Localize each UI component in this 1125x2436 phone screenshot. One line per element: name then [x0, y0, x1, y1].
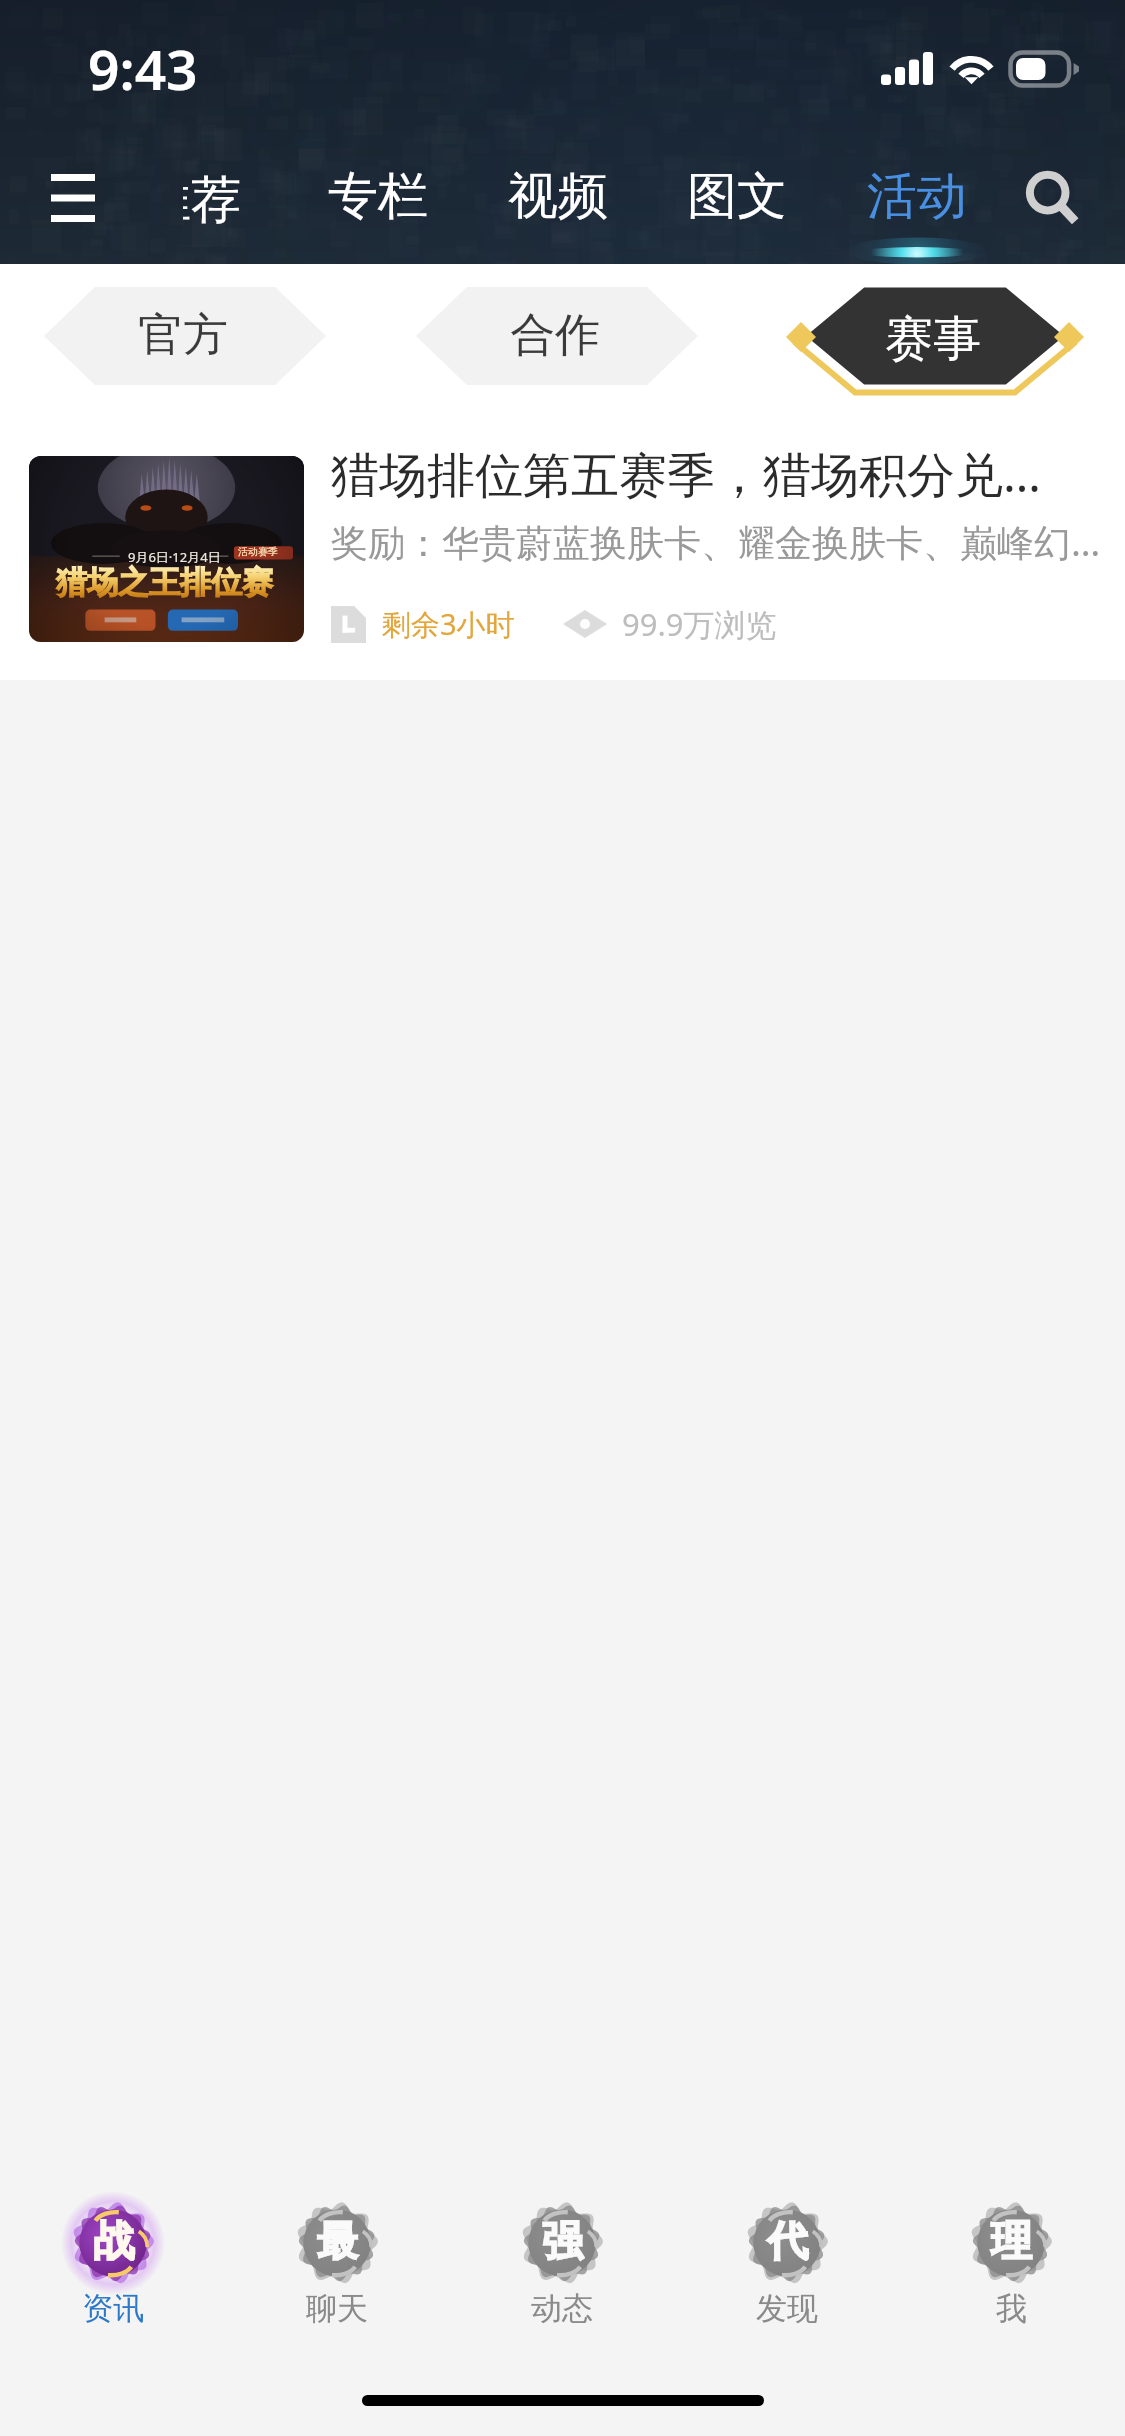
button[interactable]: 视频 — [488, 143, 628, 253]
staticText: 战 — [93, 2216, 134, 2268]
staticText: 代 — [767, 2216, 808, 2268]
staticText: 猎场之王排位赛 — [56, 563, 273, 602]
staticText: 我 — [996, 2289, 1027, 2328]
staticText: 官方 — [138, 307, 228, 364]
staticText: 猎场排位第五赛季，猎场积分兑… — [331, 441, 1041, 507]
button[interactable]: 赛事 — [777, 264, 1093, 408]
staticText: 视频 — [508, 165, 608, 228]
staticText: 9:43 — [88, 31, 198, 106]
button[interactable]: 合作 — [399, 264, 715, 408]
staticText: 活动 — [867, 165, 967, 228]
button[interactable]: 9月6日·12月4日 — [0, 408, 1125, 680]
staticText: 活动赛季 — [238, 545, 278, 558]
button[interactable]: 推荐 — [183, 143, 293, 253]
staticText: 推荐 — [183, 169, 241, 232]
button[interactable]: Menu — [33, 143, 113, 253]
staticText: 动态 — [531, 2289, 593, 2328]
button[interactable]: 最 — [247, 2180, 427, 2360]
staticText: 合作 — [510, 307, 600, 364]
staticText: 奖励：华贵蔚蓝换肤卡、耀金换肤卡、巅峰幻… — [331, 516, 1101, 567]
button[interactable]: 理 — [921, 2180, 1101, 2360]
button[interactable]: 官方 — [27, 264, 343, 408]
staticText: 发现 — [756, 2289, 818, 2328]
button[interactable]: Search — [1012, 143, 1092, 253]
button[interactable]: 强 — [472, 2180, 652, 2360]
staticText: 聊天 — [306, 2289, 368, 2328]
staticText: 99.9万浏览 — [622, 603, 777, 645]
staticText: 强 — [542, 2216, 583, 2268]
button[interactable]: 战 — [23, 2180, 203, 2360]
staticText: 理 — [991, 2216, 1032, 2268]
staticText: 资讯 — [82, 2289, 144, 2328]
staticText: 最 — [317, 2216, 358, 2268]
staticText: 剩余3小时 — [382, 604, 515, 644]
button[interactable]: 代 — [697, 2180, 877, 2360]
button[interactable]: 图文 — [667, 143, 807, 253]
staticText: 专栏 — [328, 165, 428, 228]
button[interactable]: 活动 — [847, 143, 987, 253]
staticText: 图文 — [687, 165, 787, 228]
staticText: 9月6日·12月4日 — [128, 548, 221, 566]
staticText: 赛事 — [885, 309, 981, 369]
button[interactable]: 专栏 — [308, 143, 448, 253]
